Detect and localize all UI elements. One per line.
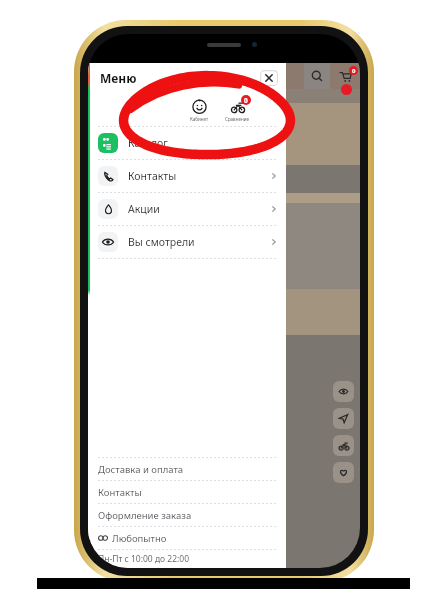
staticText: Кабинет	[190, 116, 209, 122]
staticText: ричневая,	[90, 223, 130, 233]
staticText: Меню	[100, 70, 137, 86]
staticText: Пн-Пт с 10:00 до 22:00	[98, 553, 190, 565]
button[interactable]: View	[333, 381, 354, 402]
staticText: Вы смотрели	[128, 235, 195, 249]
staticText: Оформление заказа	[98, 509, 192, 522]
button[interactable]: Share	[333, 408, 354, 429]
staticText: 0	[244, 96, 248, 105]
staticText: Triol	[90, 235, 107, 245]
staticText: Акции	[128, 202, 160, 216]
button[interactable]: Любопытно	[88, 527, 286, 549]
staticText: я Осенняя	[90, 211, 130, 221]
button[interactable]: Вы смотрели	[88, 226, 286, 258]
button[interactable]: Оформление заказа	[88, 504, 286, 526]
button[interactable]: Cart	[330, 63, 360, 89]
staticText: Сравнение	[225, 116, 249, 122]
button[interactable]: Контакты	[88, 160, 286, 192]
button[interactable]: Акции	[88, 193, 286, 225]
button[interactable]: Контакты	[88, 481, 286, 503]
button[interactable]: Favorite	[333, 462, 354, 483]
staticText: Контакты	[128, 169, 177, 183]
button[interactable]: Доставка и оплата	[88, 458, 286, 480]
staticText: Любопытно	[112, 532, 167, 545]
button[interactable]: Compare	[333, 435, 354, 456]
button[interactable]: Close	[260, 70, 278, 86]
button[interactable]: Кабинет	[188, 98, 211, 122]
staticText: Каталог	[128, 136, 168, 150]
button[interactable]: 0	[223, 98, 251, 122]
button[interactable]: Search	[304, 63, 330, 89]
staticText: Доставка и оплата	[98, 463, 184, 476]
staticText: Контакты	[98, 486, 142, 499]
staticText: 0	[352, 67, 356, 75]
button[interactable]: Каталог	[88, 127, 286, 159]
